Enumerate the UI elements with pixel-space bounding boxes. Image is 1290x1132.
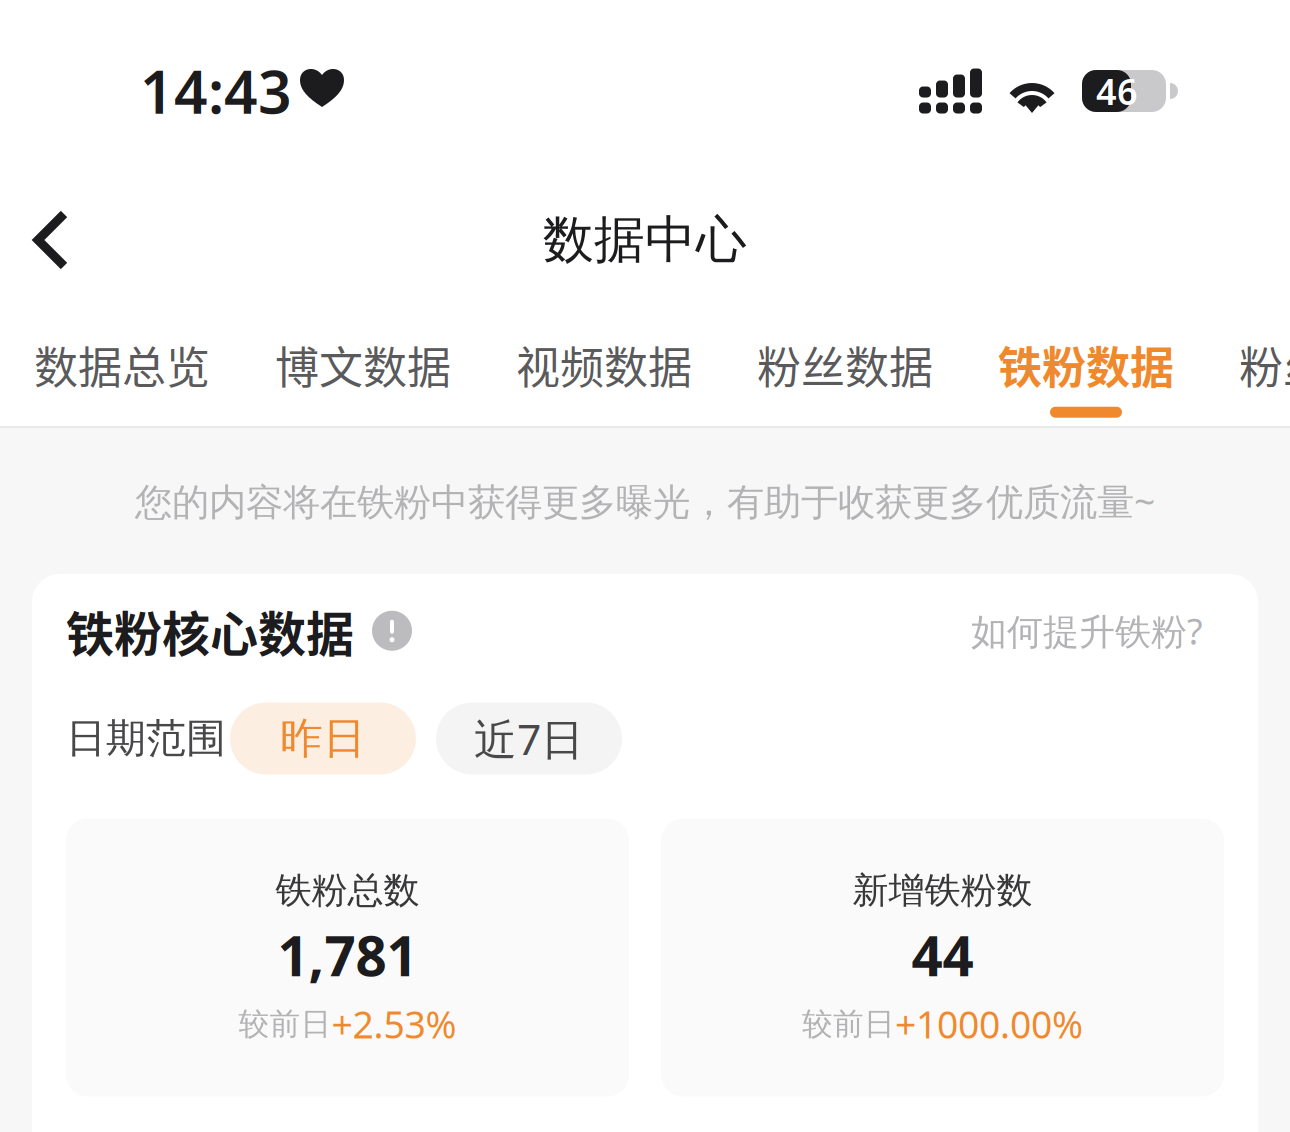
button[interactable]: 粉丝画像	[1239, 298, 1290, 426]
staticText: 较前日	[238, 1005, 331, 1043]
button[interactable]: 数据总览	[34, 298, 210, 426]
button[interactable]: 铁粉数据	[998, 298, 1174, 426]
staticText: 数据总览	[34, 333, 210, 397]
staticText: 铁粉数据	[998, 333, 1174, 397]
staticText: 14:43	[140, 52, 292, 130]
staticText: 44	[911, 919, 973, 991]
button[interactable]: 返回	[0, 182, 98, 298]
button[interactable]: 昨日	[230, 702, 416, 774]
staticText: 粉丝数据	[757, 333, 933, 397]
staticText: 新增铁粉数	[852, 868, 1032, 913]
staticText: 铁粉总数	[275, 868, 419, 913]
button[interactable]: 博文数据	[275, 298, 451, 426]
staticText: 您的内容将在铁粉中获得更多曝光，有助于收获更多优质流量~	[135, 476, 1155, 526]
staticText: 日期范围	[66, 714, 226, 763]
button[interactable]: 粉丝数据	[757, 298, 933, 426]
staticText: 博文数据	[275, 333, 451, 397]
staticText: 1,781	[277, 919, 417, 991]
staticText: 较前日	[802, 1005, 895, 1043]
staticText: +2.53%	[331, 999, 456, 1049]
staticText: 近7日	[474, 710, 584, 767]
staticText: 46	[1096, 67, 1138, 115]
staticText: 数据中心	[543, 209, 747, 271]
button[interactable]: 如何提升铁粉?	[971, 607, 1203, 655]
staticText: +1000.00%	[895, 999, 1083, 1049]
staticText: 视频数据	[516, 333, 692, 397]
staticText: 昨日	[280, 712, 366, 765]
staticText: 铁粉核心数据	[66, 596, 354, 665]
button[interactable]: 视频数据	[516, 298, 692, 426]
staticText: 如何提升铁粉?	[971, 607, 1203, 655]
button[interactable]: 近7日	[436, 702, 622, 774]
staticText: 粉丝画像	[1239, 333, 1290, 397]
